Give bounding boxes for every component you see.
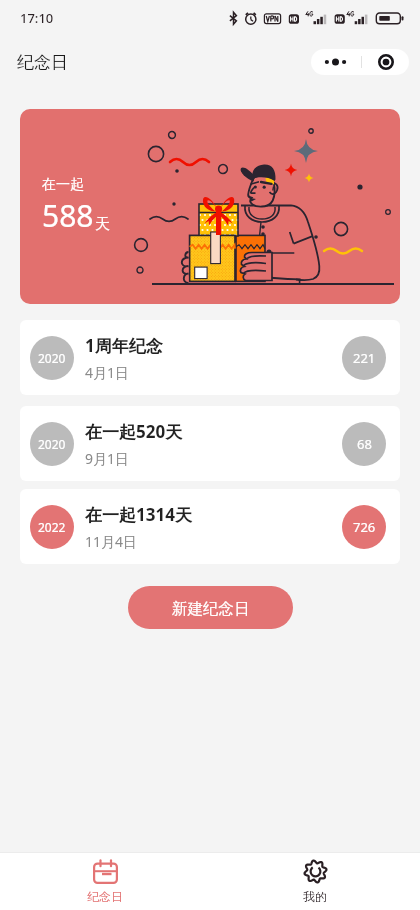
button[interactable]: 2020 [20, 406, 400, 481]
staticText: 68 [357, 435, 372, 453]
button[interactable]: Screen recorder [362, 49, 409, 75]
staticText: 在一起 [42, 176, 84, 194]
staticText: 11月4日 [85, 532, 138, 551]
staticText: 2020 [38, 350, 66, 366]
button[interactable]: 新建纪念日 [128, 586, 293, 629]
staticText: 新建纪念日 [172, 599, 250, 619]
staticText: 纪念日 [87, 889, 123, 904]
button[interactable]: More options [311, 49, 361, 75]
button[interactable]: 在一起 [20, 109, 400, 304]
staticText: 221 [353, 349, 376, 367]
staticText: 588 [42, 195, 94, 236]
staticText: 纪念日 [17, 52, 68, 73]
staticText: 1周年纪念 [85, 334, 163, 357]
staticText: 我的 [303, 889, 327, 904]
button[interactable]: 2020 [20, 320, 400, 395]
staticText: 4月1日 [85, 363, 130, 382]
staticText: 726 [353, 518, 376, 536]
staticText: 9月1日 [85, 449, 130, 468]
staticText: 17:10 [20, 9, 54, 27]
button[interactable]: 2022 [20, 489, 400, 564]
staticText: 2022 [38, 519, 66, 535]
staticText: 在一起1314天 [85, 503, 192, 526]
button[interactable]: 纪念日 [0, 859, 210, 904]
staticText: 天 [95, 215, 110, 234]
button[interactable]: 我的 [210, 859, 420, 904]
staticText: 2020 [38, 436, 66, 452]
staticText: 在一起520天 [85, 420, 183, 443]
